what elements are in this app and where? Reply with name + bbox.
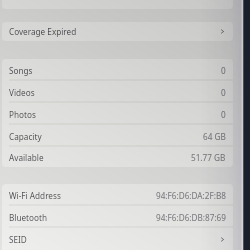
staticText: 0 bbox=[221, 87, 226, 98]
button[interactable]: Videos bbox=[2, 81, 233, 103]
staticText: 0 bbox=[221, 65, 226, 76]
button[interactable]: SEID bbox=[2, 228, 233, 250]
button[interactable]: Available bbox=[2, 147, 233, 167]
button[interactable]: Capacity bbox=[2, 125, 233, 147]
button[interactable]: Bluetooth bbox=[2, 206, 233, 228]
staticText: 64 GB bbox=[203, 131, 226, 142]
staticText: Photos bbox=[9, 109, 36, 120]
staticText: 94:F6:D6:DB:87:69 bbox=[156, 212, 226, 223]
staticText: Videos bbox=[9, 87, 35, 98]
staticText: Wi-Fi Address bbox=[9, 190, 61, 201]
staticText: Capacity bbox=[9, 131, 42, 142]
staticText: 0 bbox=[221, 109, 226, 120]
staticText: SEID bbox=[9, 234, 27, 245]
staticText: 94:F6:D6:DA:2F:B8 bbox=[156, 190, 226, 201]
staticText: 51.77 GB bbox=[191, 152, 226, 163]
staticText: Songs bbox=[9, 65, 33, 76]
staticText: Available bbox=[9, 152, 44, 163]
button[interactable]: Wi-Fi Address bbox=[2, 184, 233, 206]
button[interactable]: Coverage Expired bbox=[2, 22, 233, 41]
staticText: Bluetooth bbox=[9, 212, 47, 223]
button[interactable]: Photos bbox=[2, 103, 233, 125]
button[interactable]: Songs bbox=[2, 59, 233, 81]
staticText: Coverage Expired bbox=[9, 26, 77, 37]
